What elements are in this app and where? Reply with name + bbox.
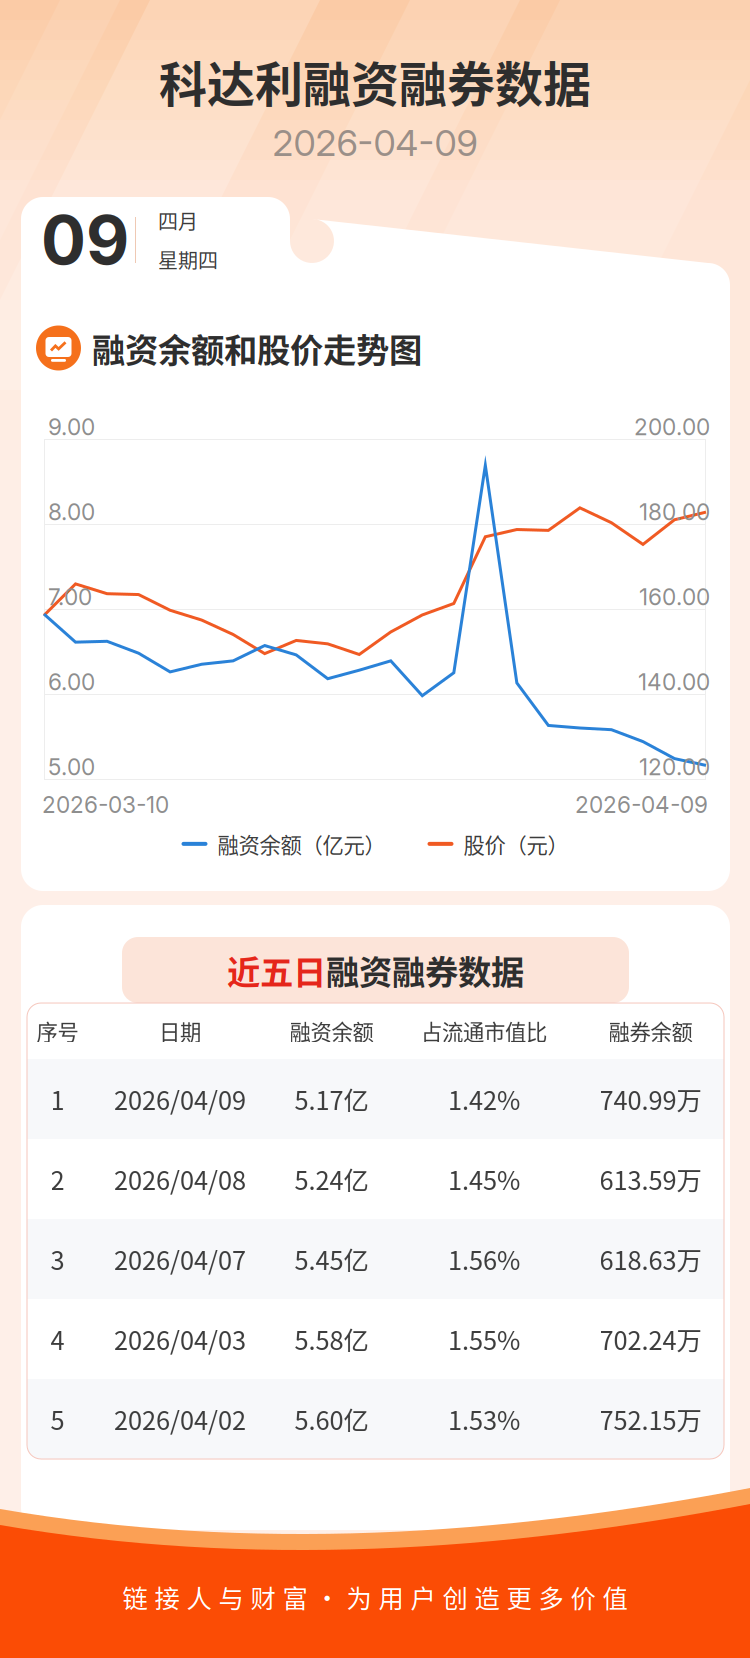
staticText: 9.00 xyxy=(48,413,95,441)
staticText: 四月 xyxy=(158,206,198,235)
staticText: 股价（元） xyxy=(463,828,568,859)
staticText: 3 xyxy=(50,1241,64,1277)
staticText: 5.60亿 xyxy=(294,1401,368,1437)
staticText: 星期四 xyxy=(158,245,218,274)
staticText: 融资余额和股价走势图 xyxy=(92,324,422,372)
staticText: 09 xyxy=(41,200,129,280)
staticText: 2026/04/03 xyxy=(114,1321,246,1357)
staticText: 5.45亿 xyxy=(294,1241,368,1277)
staticText: 融资余额 xyxy=(289,1016,373,1046)
staticText: 1 xyxy=(50,1081,64,1117)
staticText: 2026/04/08 xyxy=(114,1161,246,1197)
staticText: 752.15万 xyxy=(599,1401,701,1437)
staticText: 160.00 xyxy=(639,583,710,611)
staticText: 链接人与财富·为用户创造更多价值 xyxy=(122,1579,627,1615)
staticText: 2026-04-09 xyxy=(272,121,477,165)
staticText: 5.00 xyxy=(48,753,95,781)
staticText: 2 xyxy=(50,1161,64,1197)
staticText: 近五日 xyxy=(227,946,326,994)
staticText: 8.00 xyxy=(48,498,95,526)
staticText: 702.24万 xyxy=(599,1321,701,1357)
staticText: 618.63万 xyxy=(599,1241,701,1277)
staticText: 2026-03-10 xyxy=(42,791,169,818)
staticText: 1.42% xyxy=(448,1081,520,1117)
staticText: 1.53% xyxy=(448,1401,520,1437)
staticText: 序号 xyxy=(36,1016,78,1046)
staticText: 200.00 xyxy=(634,413,710,441)
staticText: 7.00 xyxy=(48,583,92,611)
staticText: 1.56% xyxy=(448,1241,520,1277)
staticText: 日期 xyxy=(159,1016,201,1046)
staticText: 1.55% xyxy=(448,1321,520,1357)
staticText: 融资余额（亿元） xyxy=(217,828,385,859)
staticText: 2026-04-09 xyxy=(575,791,708,818)
staticText: 180.00 xyxy=(639,498,710,526)
staticText: 613.59万 xyxy=(599,1161,701,1197)
staticText: 140.00 xyxy=(638,668,710,696)
staticText: 5 xyxy=(50,1401,64,1437)
staticText: 5.24亿 xyxy=(294,1161,368,1197)
staticText: 6.00 xyxy=(48,668,95,696)
staticText: 1.45% xyxy=(448,1161,520,1197)
staticText: 5.17亿 xyxy=(294,1081,368,1117)
staticText: 2026/04/09 xyxy=(114,1081,246,1117)
staticText: 融资融券数据 xyxy=(326,946,524,994)
staticText: 占流通市值比 xyxy=(421,1016,547,1046)
staticText: 2026/04/07 xyxy=(114,1241,246,1277)
staticText: 120.00 xyxy=(639,753,710,781)
staticText: 2026/04/02 xyxy=(114,1401,246,1437)
staticText: 740.99万 xyxy=(599,1081,701,1117)
staticText: 5.58亿 xyxy=(294,1321,368,1357)
staticText: 4 xyxy=(50,1321,64,1357)
staticText: 融券余额 xyxy=(608,1016,692,1046)
staticText: 科达利融资融券数据 xyxy=(159,46,591,116)
